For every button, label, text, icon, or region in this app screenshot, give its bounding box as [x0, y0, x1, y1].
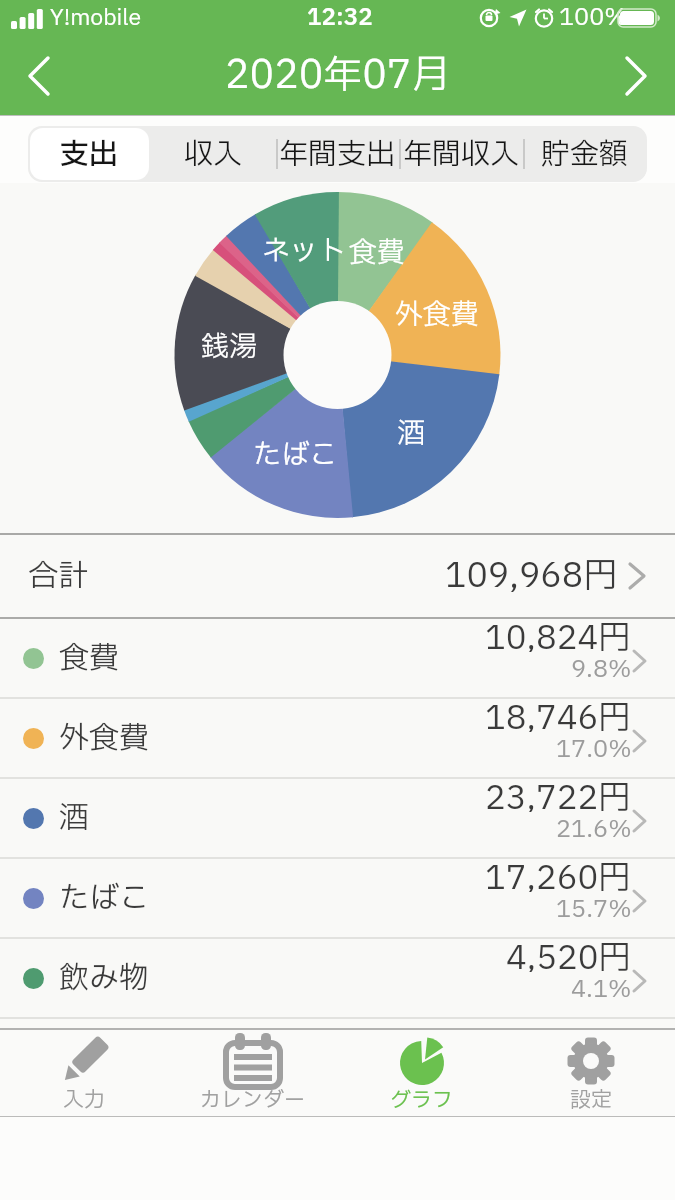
- staticText: 109,968円: [445, 551, 618, 602]
- button[interactable]: 収入: [151, 126, 275, 182]
- staticText: カレンダー: [200, 1085, 305, 1109]
- staticText: 銭湯: [201, 326, 258, 368]
- staticText: 12:32: [307, 1, 373, 35]
- button[interactable]: 年間支出: [275, 126, 399, 182]
- button[interactable]: [28, 56, 50, 96]
- staticText: Y!mobile: [50, 2, 142, 35]
- button[interactable]: 貯金額: [523, 126, 647, 182]
- button[interactable]: 酒: [0, 779, 675, 857]
- button[interactable]: グラフ: [337, 1030, 506, 1116]
- staticText: 年間支出: [279, 133, 396, 176]
- staticText: 23,722円: [485, 774, 632, 812]
- button[interactable]: 飲み物: [0, 939, 675, 1017]
- staticText: 21.6%: [556, 812, 632, 842]
- staticText: 支出: [60, 133, 119, 176]
- staticText: 入力: [63, 1085, 105, 1109]
- staticText: 年間収入: [403, 133, 520, 176]
- button[interactable]: 合計: [0, 535, 675, 617]
- staticText: 貯金額: [541, 133, 629, 176]
- staticText: たばこ: [253, 434, 338, 476]
- button[interactable]: 支出: [30, 128, 149, 180]
- button[interactable]: [625, 56, 647, 96]
- staticText: 17,260円: [485, 854, 632, 892]
- staticText: 外食費: [395, 294, 480, 336]
- button[interactable]: 年間収入: [399, 126, 523, 182]
- staticText: 15.7%: [556, 892, 632, 922]
- staticText: 2020年07月: [225, 47, 451, 105]
- button[interactable]: たばこ: [0, 859, 675, 937]
- staticText: 4.1%: [571, 972, 632, 1002]
- staticText: 17.0%: [556, 732, 632, 762]
- staticText: 飲み物: [59, 956, 149, 1001]
- staticText: グラフ: [390, 1085, 453, 1109]
- staticText: ネット: [262, 230, 347, 272]
- button[interactable]: 設定: [506, 1030, 675, 1116]
- staticText: 100%: [559, 0, 628, 36]
- button[interactable]: 外食費: [0, 699, 675, 777]
- staticText: 4,520円: [506, 934, 632, 972]
- button[interactable]: 食費: [0, 619, 675, 697]
- staticText: 18,746円: [485, 694, 632, 732]
- staticText: 食費: [349, 232, 406, 274]
- staticText: 9.8%: [571, 652, 632, 682]
- staticText: 収入: [184, 133, 243, 176]
- staticText: 酒: [397, 413, 426, 455]
- staticText: たばこ: [59, 876, 149, 921]
- button[interactable]: 入力: [0, 1030, 168, 1116]
- button[interactable]: カレンダー: [168, 1030, 337, 1116]
- staticText: 酒: [59, 796, 89, 841]
- staticText: 合計: [28, 554, 88, 599]
- staticText: 10,824円: [485, 614, 632, 652]
- staticText: 外食費: [59, 716, 149, 761]
- staticText: 設定: [570, 1085, 612, 1109]
- staticText: 食費: [59, 636, 119, 681]
